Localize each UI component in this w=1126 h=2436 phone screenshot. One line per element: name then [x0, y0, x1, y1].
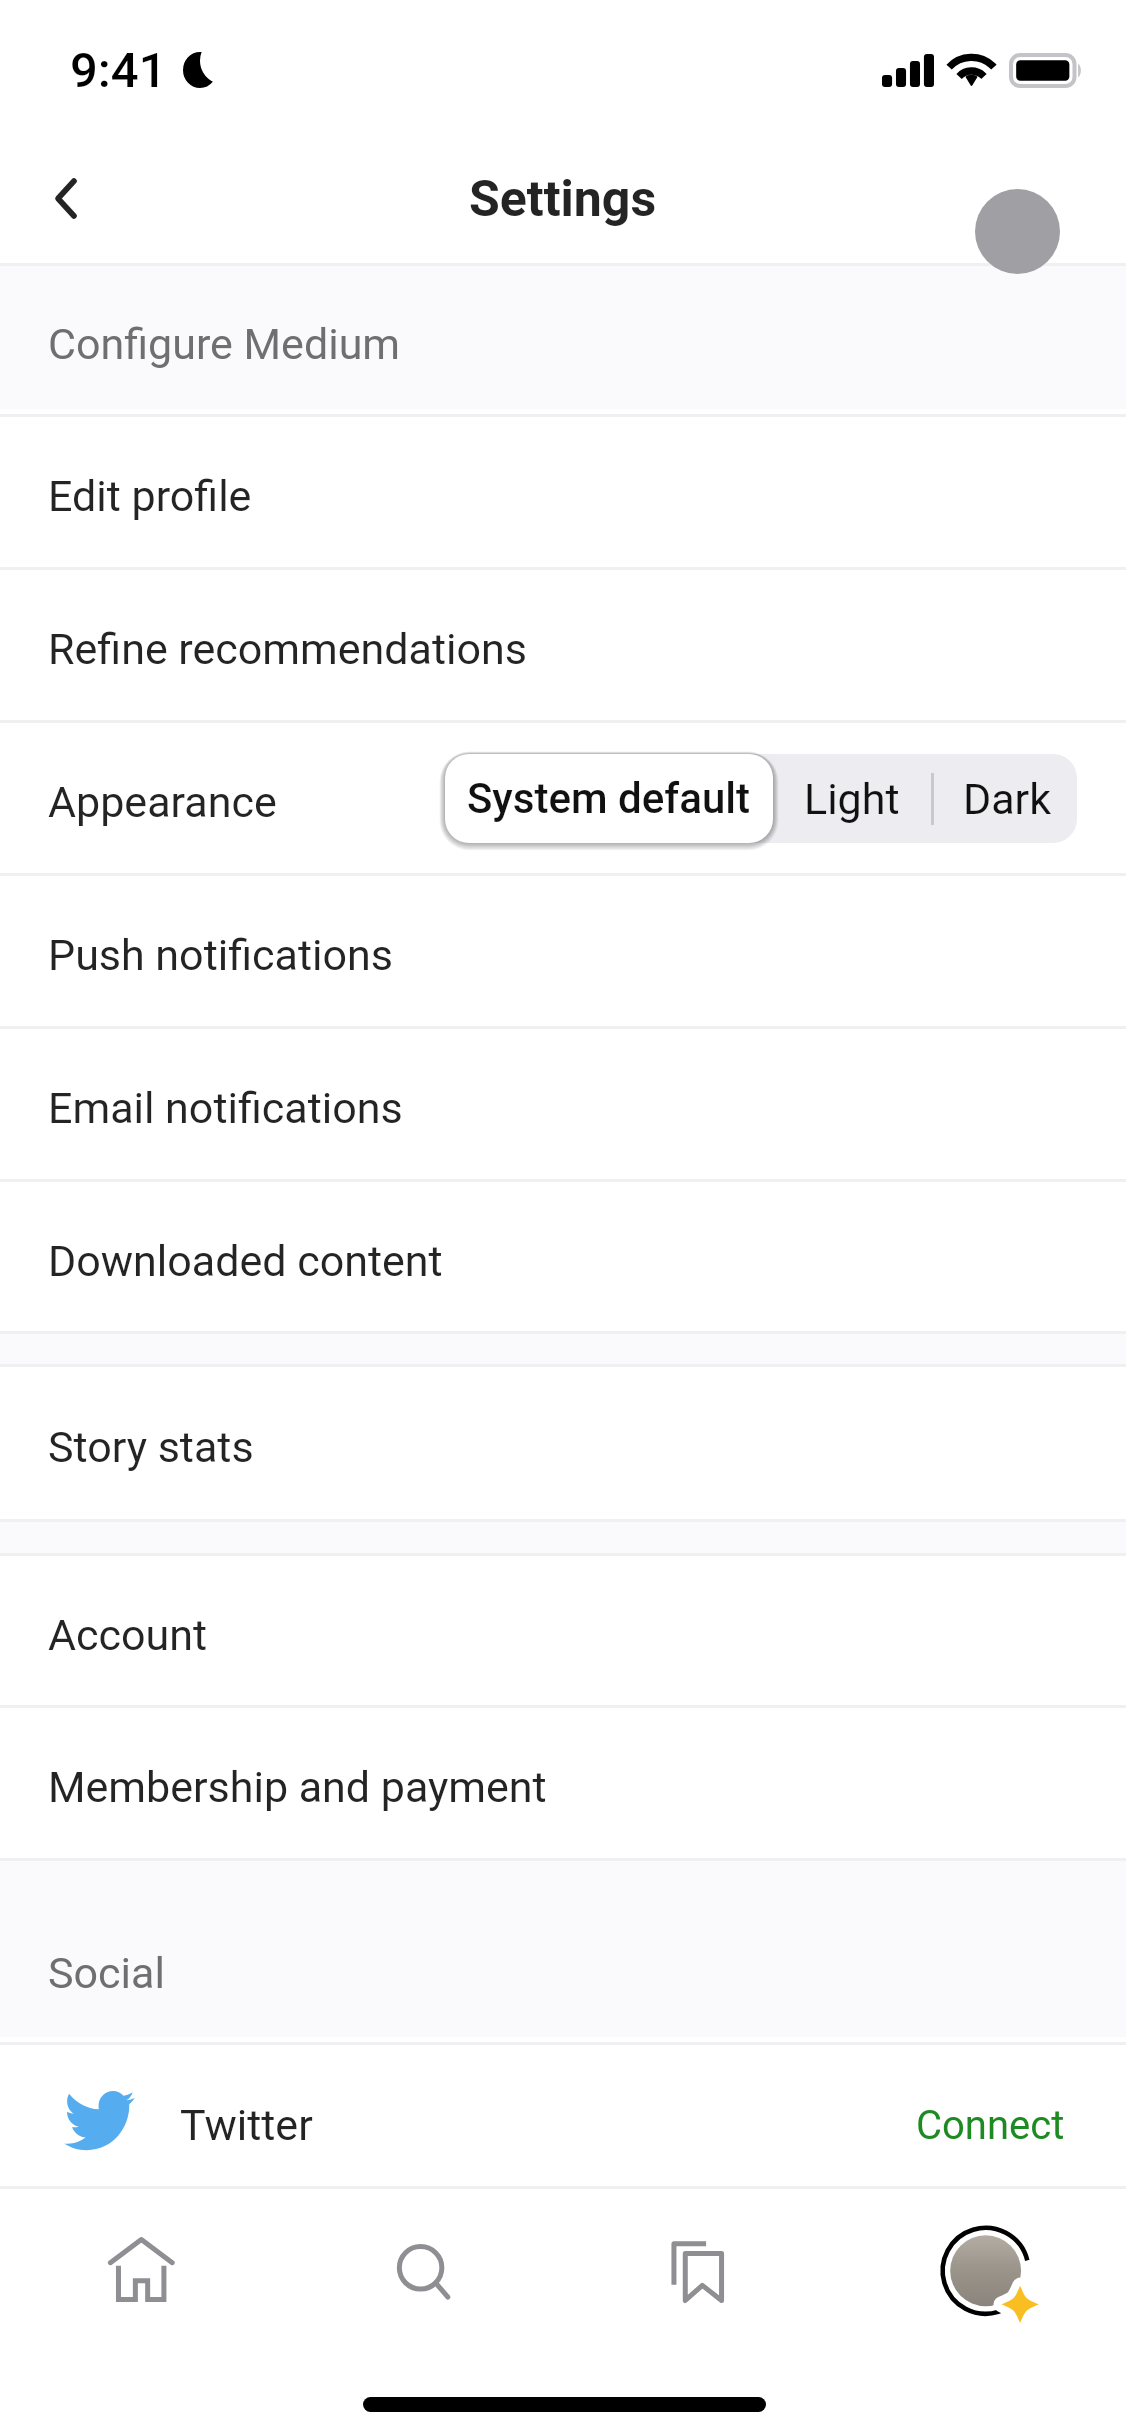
staticText: Connect [916, 2102, 1065, 2149]
button[interactable]: Your profile [975, 189, 1060, 274]
button[interactable]: Home [86, 2214, 196, 2324]
button[interactable]: Account [0, 1556, 1126, 1705]
button[interactable]: Edit profile [0, 417, 1126, 567]
button[interactable]: Search [367, 2214, 477, 2324]
staticText: Push notifications [48, 930, 393, 980]
staticText: Refine recommendations [48, 624, 527, 674]
staticText: Edit profile [48, 471, 252, 521]
staticText: Story stats [48, 1422, 254, 1472]
button[interactable]: System default [445, 754, 773, 843]
button[interactable]: Email notifications [0, 1029, 1126, 1179]
button[interactable]: Back [29, 161, 103, 235]
staticText: Dark [963, 774, 1051, 824]
button[interactable]: Light [773, 754, 931, 843]
button[interactable]: Bookmarks [648, 2214, 758, 2324]
button[interactable]: Dark [931, 754, 1077, 843]
staticText: Email notifications [48, 1083, 403, 1133]
staticText: Membership and payment [48, 1762, 547, 1812]
button[interactable]: Refine recommendations [0, 570, 1126, 720]
staticText: Appearance [48, 777, 277, 827]
staticText: System default [467, 774, 751, 823]
staticText: Account [48, 1610, 208, 1660]
staticText: Settings [469, 170, 657, 229]
staticText: Downloaded content [48, 1236, 443, 1286]
button[interactable]: Push notifications [0, 876, 1126, 1026]
staticText: Configure Medium [48, 319, 401, 369]
staticText: Twitter [180, 2100, 313, 2150]
button[interactable]: Membership and payment [0, 1708, 1126, 1858]
button[interactable]: Downloaded content [0, 1182, 1126, 1331]
staticText: 9:41 [70, 42, 167, 99]
staticText: Light [804, 774, 900, 824]
button[interactable]: Story stats [0, 1367, 1126, 1519]
staticText: Social [48, 1948, 165, 1998]
button[interactable]: Your profile [930, 2214, 1040, 2324]
button[interactable]: Twitter [0, 2045, 1126, 2186]
